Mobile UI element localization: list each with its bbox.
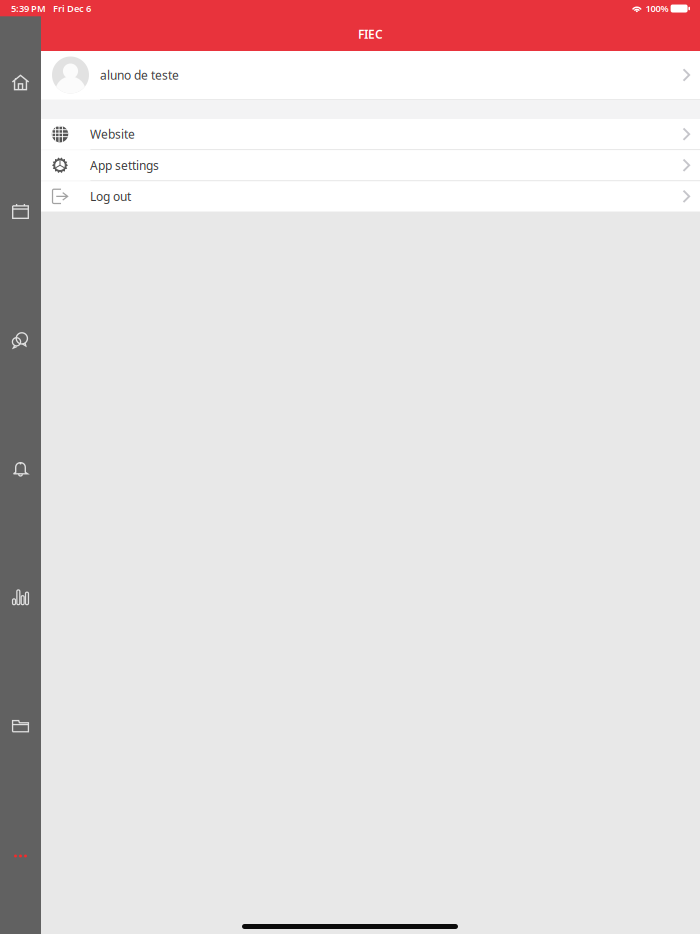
button[interactable]: Log out — [41, 181, 700, 211]
button[interactable]: Messages — [0, 318, 41, 362]
staticText: 100% — [646, 2, 669, 15]
staticText: 5:39 PM — [11, 2, 46, 15]
staticText: App settings — [90, 157, 159, 173]
button[interactable]: Calendar — [0, 189, 41, 233]
button[interactable]: Website — [41, 119, 700, 149]
staticText: Log out — [90, 188, 131, 204]
staticText: FIEC — [358, 26, 383, 42]
button[interactable]: Home — [0, 60, 41, 104]
button[interactable]: More — [0, 842, 41, 870]
button[interactable]: Documents — [0, 704, 41, 748]
button[interactable]: aluno de teste — [41, 51, 700, 99]
button[interactable]: Grades — [0, 575, 41, 619]
button[interactable]: App settings — [41, 150, 700, 180]
staticText: Website — [90, 126, 135, 142]
button[interactable]: Notifications — [0, 447, 41, 491]
staticText: Fri Dec 6 — [53, 2, 91, 15]
staticText: aluno de teste — [100, 67, 179, 83]
